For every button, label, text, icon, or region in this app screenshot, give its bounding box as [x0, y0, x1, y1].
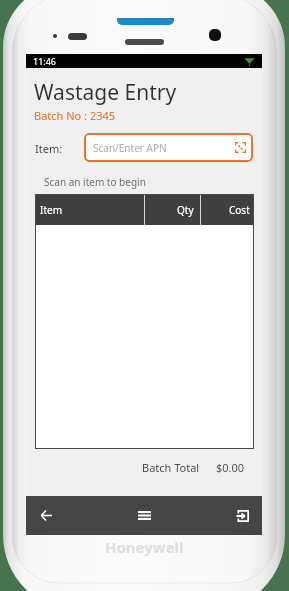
- button[interactable]: Menu: [128, 496, 160, 535]
- staticText: Scan/Enter APN: [93, 141, 167, 155]
- staticText: Cost: [229, 203, 250, 217]
- staticText: Batch No : 2345: [34, 108, 116, 123]
- staticText: $0.00: [216, 460, 245, 475]
- staticText: Batch Total: [142, 460, 200, 475]
- button[interactable]: Exit: [226, 496, 258, 535]
- staticText: Qty: [177, 203, 194, 217]
- staticText: 11:46: [33, 55, 57, 67]
- staticText: Scan an item to begin: [44, 175, 146, 189]
- staticText: Wastage Entry: [34, 78, 177, 107]
- button[interactable]: Scan/Enter APN: [84, 133, 253, 162]
- staticText: Honeywell: [105, 537, 184, 557]
- staticText: Item: [40, 203, 62, 217]
- button[interactable]: Back: [30, 496, 62, 535]
- staticText: Item:: [35, 141, 63, 156]
